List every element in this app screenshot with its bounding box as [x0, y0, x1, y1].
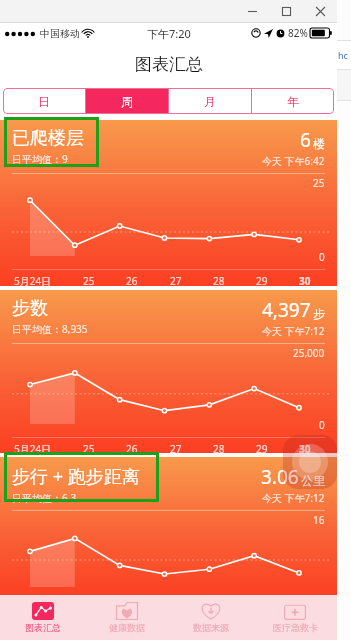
staticText: 医疗急救卡 — [273, 622, 318, 633]
staticText: 29 — [256, 442, 268, 453]
button[interactable]: Close — [303, 0, 337, 22]
staticText: 4,397 — [262, 297, 311, 323]
staticText: 16 — [313, 513, 325, 527]
staticText: 日平均值：6.3 — [12, 491, 77, 505]
staticText: 日平均值：9 — [12, 152, 68, 166]
staticText: 5月24日 — [14, 442, 52, 453]
button[interactable]: 周 — [86, 88, 168, 114]
staticText: 25,000 — [293, 346, 325, 360]
button[interactable]: 年 — [252, 88, 334, 114]
staticText: 图表汇总 — [135, 54, 203, 75]
button[interactable]: 医疗急救卡 — [253, 595, 337, 640]
staticText: 日平均值：8,935 — [12, 322, 88, 336]
button[interactable]: Minimize — [235, 0, 269, 22]
staticText: 步数 — [12, 297, 48, 320]
staticText: 今天 下午7:12 — [262, 324, 325, 338]
staticText: 图表汇总 — [25, 622, 61, 633]
staticText: 25 — [313, 176, 325, 190]
button[interactable]: 数据来源 — [169, 595, 253, 640]
staticText: 中国移动 — [40, 27, 80, 40]
staticText: 0 — [319, 250, 325, 264]
staticText: 5月24日 — [14, 274, 52, 286]
button[interactable]: Maximize — [269, 0, 303, 22]
staticText: 楼 — [313, 136, 325, 151]
button[interactable]: 月 — [169, 88, 251, 114]
staticText: 3.06 — [261, 464, 299, 490]
button[interactable]: 健康数据 — [85, 595, 169, 640]
staticText: 下午7:20 — [147, 26, 191, 41]
staticText: 周 — [121, 94, 133, 109]
staticText: 29 — [256, 274, 268, 286]
staticText: 26 — [126, 442, 138, 453]
staticText: 公里 — [301, 473, 325, 488]
staticText: 27 — [170, 442, 182, 453]
staticText: 25 — [83, 274, 95, 286]
staticText: 82% — [288, 26, 308, 40]
staticText: 步行 + 跑步距离 — [12, 464, 140, 489]
staticText: 28 — [213, 274, 225, 286]
staticText: 0 — [319, 418, 325, 432]
staticText: 日 — [38, 94, 50, 109]
staticText: 25 — [83, 442, 95, 453]
staticText: 今天 下午7:12 — [262, 491, 325, 505]
staticText: 数据来源 — [193, 622, 229, 633]
staticText: 步 — [313, 306, 325, 321]
staticText: 6 — [300, 127, 311, 153]
button[interactable]: 图表汇总 — [0, 595, 85, 640]
button[interactable]: 已爬楼层 — [0, 120, 337, 286]
staticText: 26 — [126, 274, 138, 286]
staticText: 月 — [204, 94, 216, 109]
button[interactable]: 步行 + 跑步距离 — [0, 457, 337, 597]
staticText: 已爬楼层 — [12, 127, 84, 150]
staticText: 30 — [299, 442, 311, 453]
staticText: 30 — [299, 274, 311, 286]
staticText: hc — [338, 49, 348, 61]
button[interactable]: 日 — [3, 88, 85, 114]
staticText: 健康数据 — [109, 622, 145, 633]
staticText: 27 — [170, 274, 182, 286]
staticText: 28 — [213, 442, 225, 453]
staticText: 今天 下午6:42 — [262, 154, 325, 168]
staticText: 年 — [287, 94, 299, 109]
button[interactable]: 步数 — [0, 290, 337, 453]
